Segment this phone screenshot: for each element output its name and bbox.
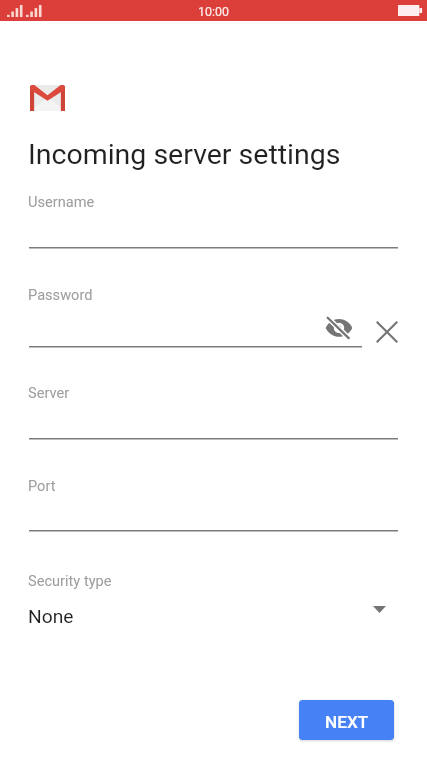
- staticText: NEXT: [325, 712, 369, 732]
- staticText: Port: [28, 477, 56, 494]
- button[interactable]: Show password: [321, 310, 357, 345]
- button[interactable]: Clear text: [373, 318, 401, 346]
- staticText: Password: [28, 286, 93, 303]
- staticText: Incoming server settings: [28, 138, 341, 171]
- button[interactable]: None: [0, 600, 427, 634]
- staticText: Security type: [28, 572, 112, 589]
- staticText: None: [28, 605, 74, 628]
- staticText: Username: [28, 193, 95, 210]
- button[interactable]: NEXT: [299, 700, 394, 740]
- staticText: 10:00: [0, 4, 427, 19]
- staticText: Server: [28, 384, 70, 401]
